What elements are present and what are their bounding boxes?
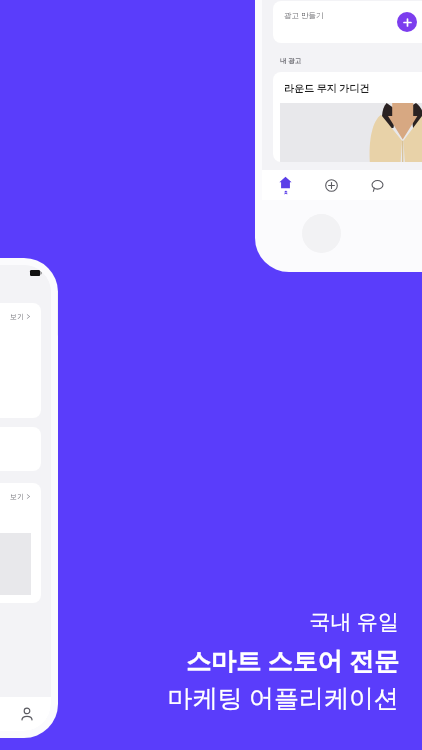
staticText: 마케팅 어플리케이션: [167, 680, 399, 714]
staticText: 국내 유일: [309, 607, 399, 636]
staticText: 라운드 무지 가디건: [284, 81, 370, 95]
staticText: 보기: [10, 312, 24, 321]
button[interactable]: 보기: [0, 303, 41, 418]
button[interactable]: 라운드 무지 가디건: [273, 72, 422, 162]
button[interactable]: 프로필: [2, 697, 51, 731]
staticText: 내 광고: [280, 56, 302, 65]
staticText: 홈: [284, 190, 288, 195]
button[interactable]: 보기: [0, 483, 41, 603]
button[interactable]: 홈 버튼: [302, 214, 341, 253]
button[interactable]: 홈: [262, 170, 308, 200]
staticText: 스마트 스토어 전문: [185, 643, 399, 677]
button[interactable]: 메시지: [354, 170, 401, 200]
staticText: 광고 만들기: [284, 10, 324, 20]
button[interactable]: 추가: [308, 170, 354, 200]
button[interactable]: 광고 만들기: [273, 1, 422, 43]
staticText: 보기: [10, 492, 24, 501]
button[interactable]: 광고 만들기 추가: [397, 12, 417, 32]
